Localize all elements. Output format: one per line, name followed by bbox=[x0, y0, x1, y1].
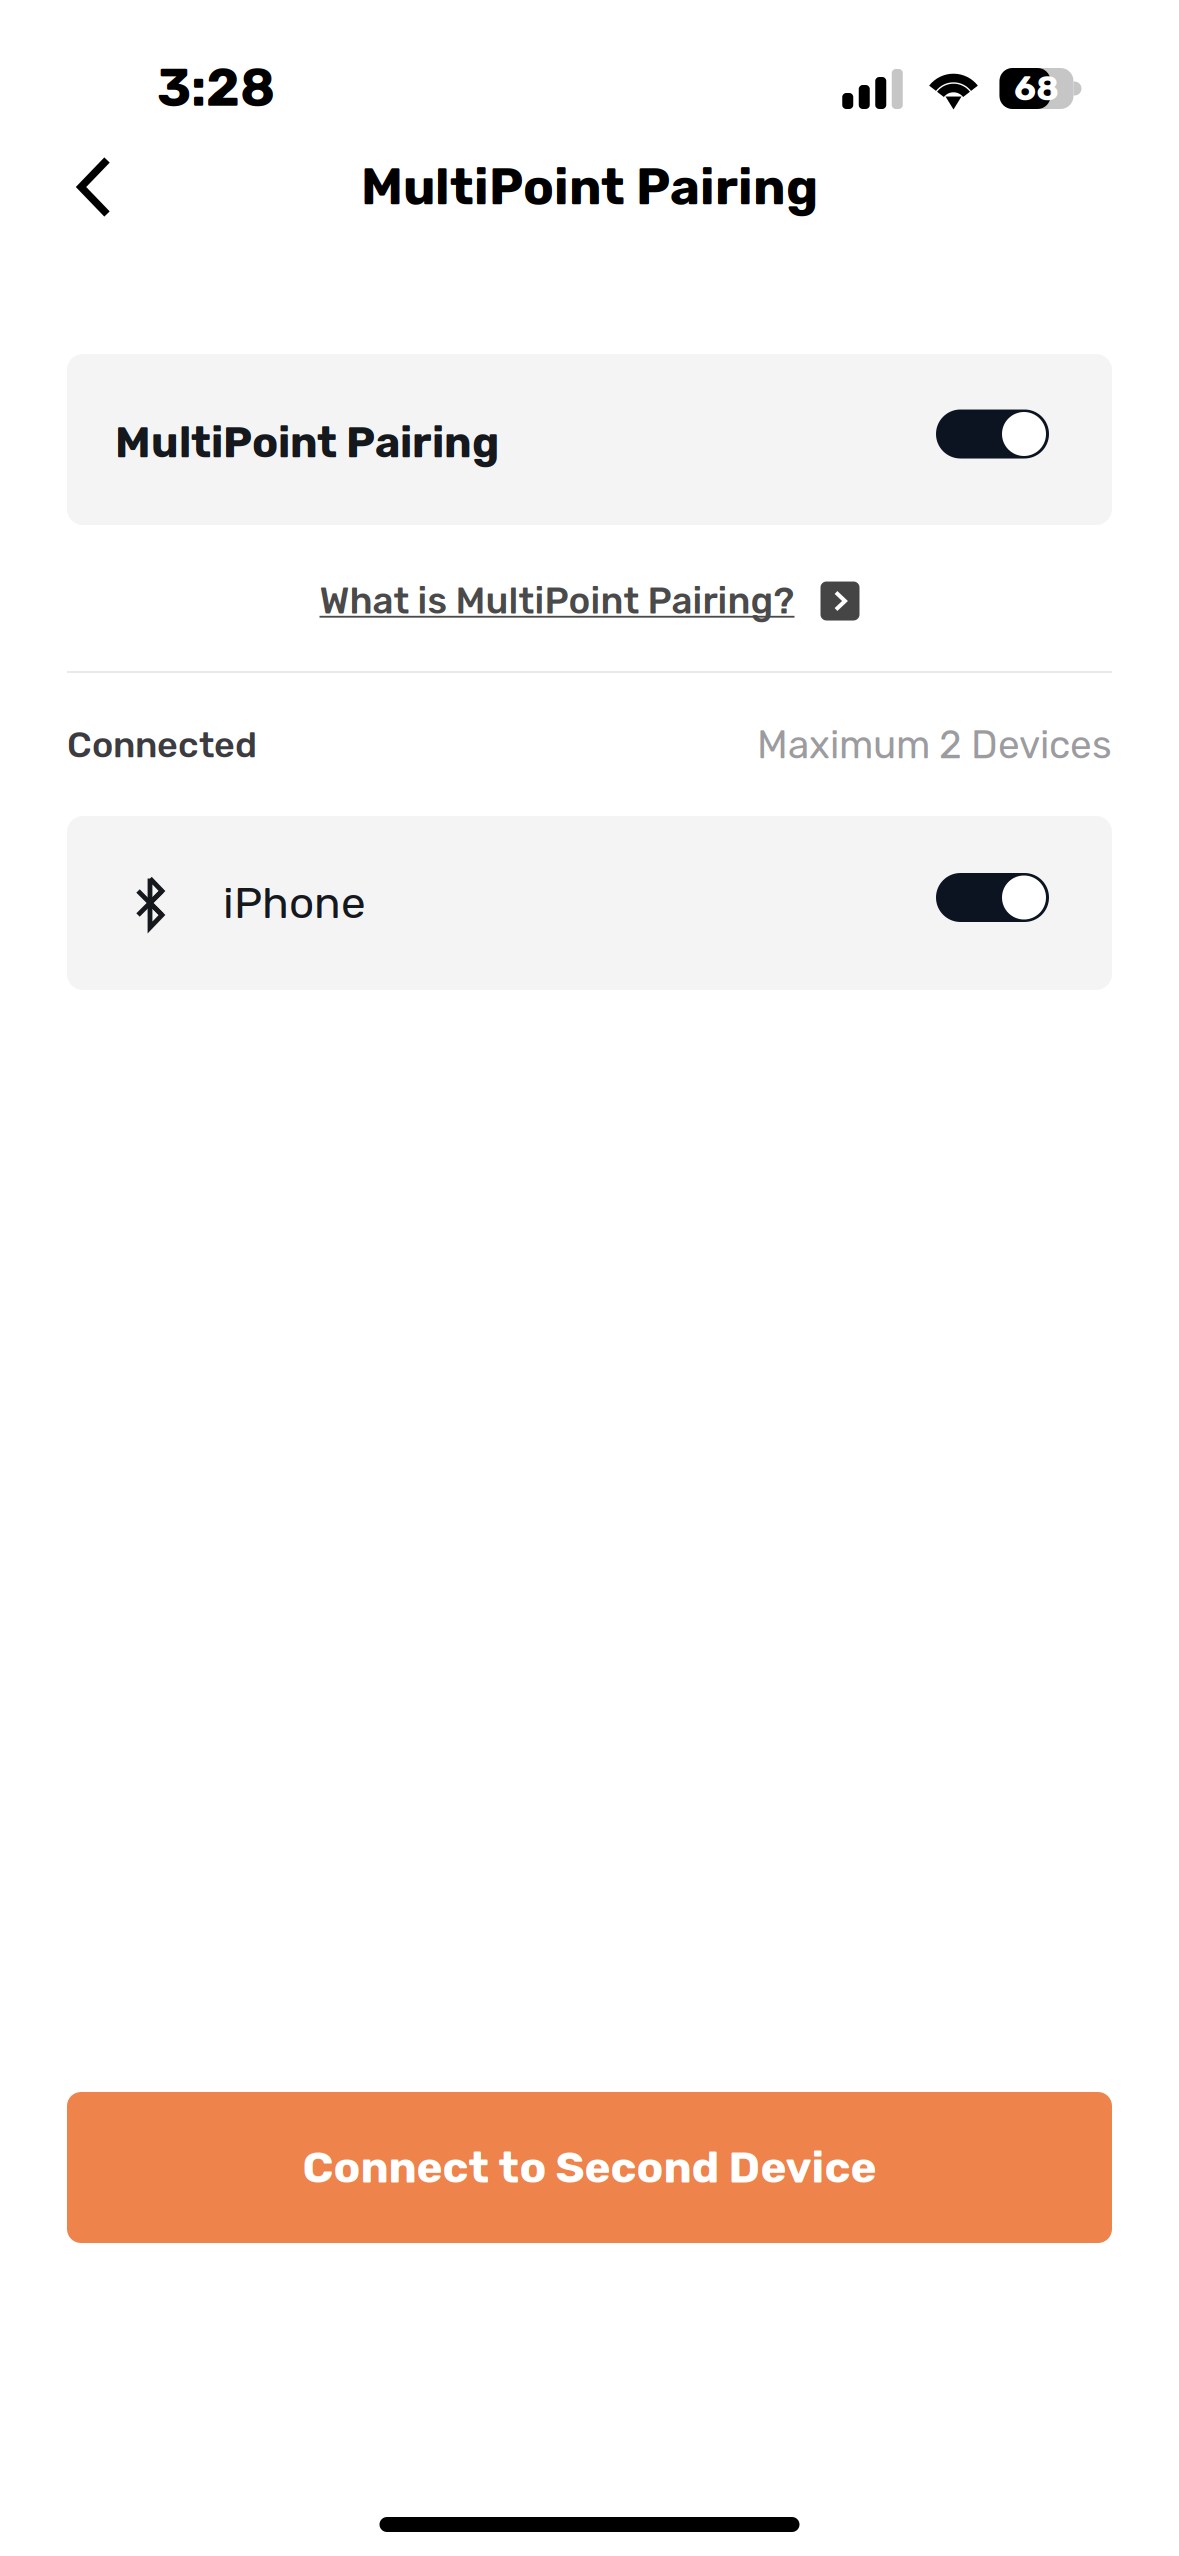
staticText: Maximum 2 Devices bbox=[757, 722, 1112, 768]
button[interactable]: What is MultiPoint Pairing? bbox=[319, 563, 859, 639]
button[interactable]: MultiPoint Pairing bbox=[936, 409, 1049, 469]
staticText: 3:28 bbox=[157, 57, 275, 119]
staticText: What is MultiPoint Pairing? bbox=[319, 579, 794, 623]
staticText: 68 bbox=[1014, 68, 1059, 109]
staticText: MultiPoint Pairing bbox=[361, 157, 818, 217]
staticText: MultiPoint Pairing bbox=[115, 417, 499, 468]
staticText: Connect to Second Device bbox=[302, 2141, 876, 2193]
button[interactable]: Back bbox=[39, 132, 149, 242]
staticText: Connected bbox=[67, 724, 257, 766]
button[interactable]: iPhone bbox=[936, 873, 1049, 933]
button[interactable]: Connect to Second Device bbox=[67, 2092, 1112, 2243]
staticText: iPhone bbox=[223, 877, 366, 929]
